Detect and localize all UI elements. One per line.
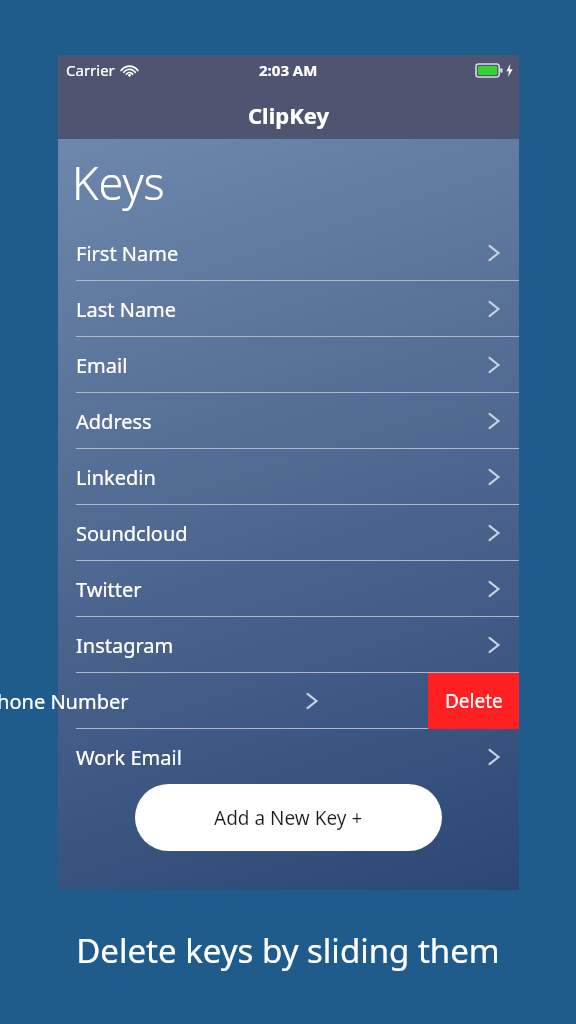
- button[interactable]: Instagram: [58, 617, 519, 673]
- staticText: Address: [76, 408, 152, 435]
- staticText: Work Email: [76, 744, 182, 771]
- staticText: Keys: [72, 152, 165, 213]
- staticText: ClipKey: [248, 100, 330, 130]
- staticText: Instagram: [76, 632, 174, 659]
- button[interactable]: First Name: [58, 225, 519, 281]
- button[interactable]: Linkedin: [58, 449, 519, 505]
- button[interactable]: Last Name: [58, 281, 519, 337]
- button[interactable]: Soundcloud: [58, 505, 519, 561]
- staticText: Phone Number: [0, 688, 129, 715]
- button[interactable]: Add a New Key +: [135, 784, 442, 851]
- button[interactable]: Email: [58, 337, 519, 393]
- staticText: First Name: [76, 240, 179, 267]
- button[interactable]: Phone Number: [0, 673, 337, 729]
- staticText: Delete keys by sliding them: [20, 928, 556, 973]
- staticText: Linkedin: [76, 464, 156, 491]
- button[interactable]: Twitter: [58, 561, 519, 617]
- staticText: Add a New Key +: [214, 805, 363, 831]
- staticText: Carrier: [66, 60, 115, 80]
- staticText: Twitter: [76, 576, 142, 603]
- staticText: 2:03 AM: [259, 60, 318, 80]
- staticText: Email: [76, 352, 128, 379]
- button[interactable]: Address: [58, 393, 519, 449]
- button[interactable]: Delete: [428, 673, 519, 729]
- button[interactable]: Work Email: [58, 729, 519, 785]
- staticText: Soundcloud: [76, 520, 188, 547]
- staticText: Delete: [445, 688, 503, 714]
- staticText: Last Name: [76, 296, 177, 323]
